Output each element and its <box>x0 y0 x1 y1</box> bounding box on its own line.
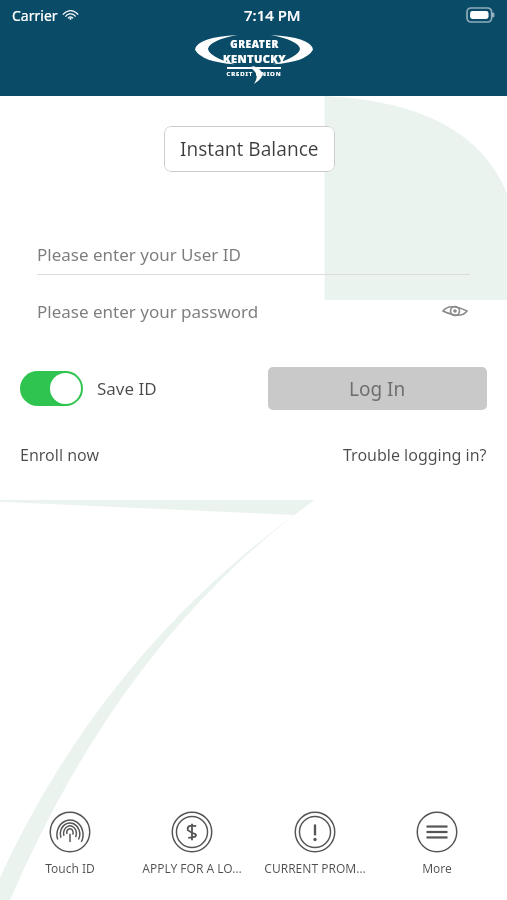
button[interactable]: Save ID <box>20 371 157 406</box>
staticText: Instant Balance <box>180 136 319 162</box>
button[interactable]: Instant Balance <box>164 126 335 172</box>
staticText: Save ID <box>97 377 157 400</box>
button[interactable]: Enroll now <box>20 440 99 470</box>
staticText: Please enter your password <box>37 300 259 323</box>
staticText: More <box>422 860 452 876</box>
staticText: Please enter your User ID <box>37 243 241 266</box>
staticText: Touch ID <box>45 860 95 876</box>
button[interactable]: Touch ID <box>12 809 128 878</box>
staticText: Trouble logging in? <box>343 444 487 466</box>
staticText: CREDIT UNION <box>226 70 282 78</box>
button[interactable]: CURRENT PROM… <box>257 809 373 878</box>
button[interactable]: Please enter your User ID <box>37 236 470 272</box>
button[interactable]: APPLY FOR A LO… <box>134 809 250 878</box>
staticText: APPLY FOR A LO… <box>142 860 242 876</box>
button[interactable]: Log In <box>268 367 487 410</box>
button[interactable]: More <box>379 809 495 878</box>
staticText: Carrier <box>12 6 58 25</box>
button[interactable]: Trouble logging in? <box>343 440 487 470</box>
staticText: Log In <box>349 376 406 402</box>
button[interactable]: Greater Kentucky Credit Union <box>195 32 313 84</box>
staticText: KENTUCKY <box>223 51 286 66</box>
staticText: 7:14 PM <box>244 5 301 25</box>
staticText: GREATER <box>230 37 279 51</box>
staticText: Enroll now <box>20 444 99 466</box>
staticText: CURRENT PROM… <box>264 860 366 876</box>
button[interactable]: Show password <box>440 296 470 326</box>
button[interactable]: Please enter your password <box>37 293 470 329</box>
